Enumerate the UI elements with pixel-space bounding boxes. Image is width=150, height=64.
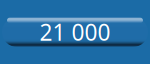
staticText: 21 000 xyxy=(39,17,110,47)
button[interactable]: 21 000 xyxy=(2,17,148,47)
